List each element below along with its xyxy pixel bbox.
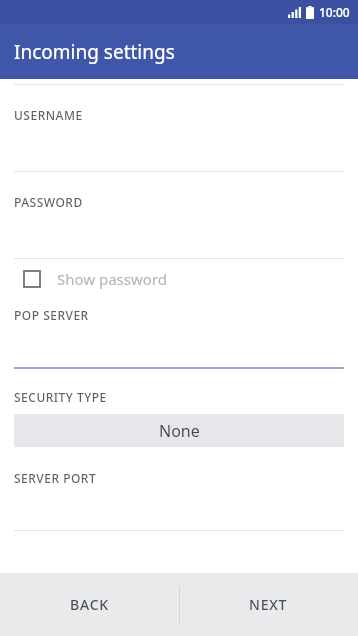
button[interactable]: NEXT	[179, 573, 358, 636]
button[interactable]: None	[14, 414, 344, 447]
staticText: POP SERVER	[14, 307, 89, 323]
button[interactable]: PASSWORD	[0, 172, 358, 258]
staticText: SECURITY TYPE	[14, 389, 107, 405]
staticText: Show password	[57, 269, 167, 289]
button[interactable]: USERNAME	[0, 85, 358, 171]
button[interactable]: Show password	[0, 259, 358, 299]
staticText: SERVER PORT	[14, 470, 97, 486]
staticText: Incoming settings	[14, 39, 175, 65]
staticText: NEXT	[249, 595, 288, 614]
staticText: BACK	[70, 595, 109, 614]
staticText: 10:00	[319, 4, 350, 20]
staticText: None	[159, 420, 200, 442]
staticText: USERNAME	[14, 107, 83, 123]
staticText: PASSWORD	[14, 194, 83, 210]
button[interactable]: BACK	[0, 573, 179, 636]
